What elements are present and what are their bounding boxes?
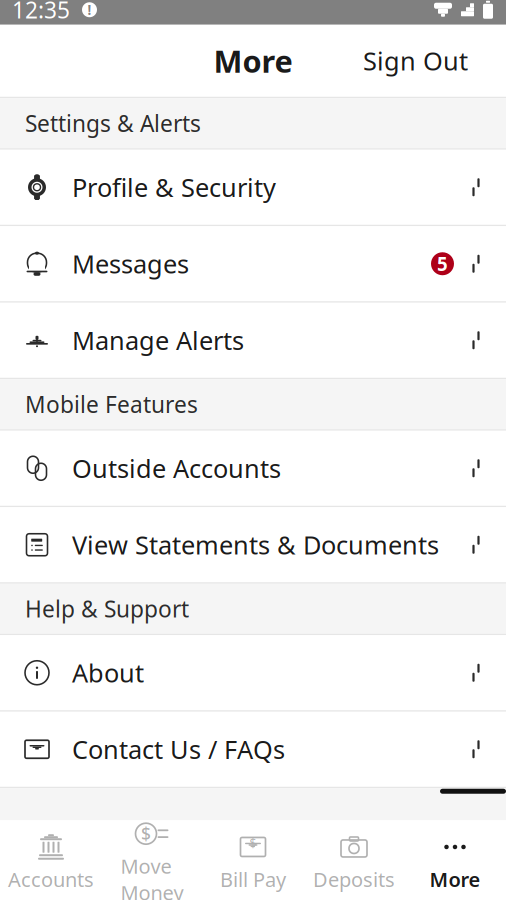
button[interactable]: Outside Accounts (0, 431, 506, 506)
staticText: Settings & Alerts (25, 108, 201, 138)
button[interactable]: Accounts (0, 827, 101, 899)
staticText: About (72, 656, 144, 689)
staticText: Move Money (120, 853, 183, 900)
button[interactable]: $ (101, 827, 202, 899)
button[interactable]: Deposits (303, 827, 404, 899)
staticText: Mobile Features (25, 389, 198, 419)
button[interactable]: Contact Us / FAQs (0, 712, 506, 787)
button[interactable]: View Statements & Documents (0, 507, 506, 582)
button[interactable]: Sign Out (349, 32, 482, 89)
staticText: More (213, 40, 292, 81)
staticText: View Statements & Documents (72, 528, 439, 561)
staticText: Bill Pay (220, 866, 286, 893)
button[interactable]: About (0, 635, 506, 710)
staticText: More (429, 866, 480, 893)
staticText: $ (249, 835, 256, 851)
staticText: Sign Out (363, 44, 468, 77)
staticText: Deposits (313, 866, 395, 893)
button[interactable]: Messages (0, 226, 506, 301)
staticText: ! (87, 1, 91, 19)
staticText: Manage Alerts (72, 323, 244, 357)
button[interactable]: $ (202, 827, 303, 899)
staticText: Messages (72, 247, 189, 280)
staticText: $ (141, 822, 151, 845)
staticText: Accounts (8, 866, 94, 893)
staticText: Outside Accounts (72, 451, 281, 485)
button[interactable]: More (404, 827, 505, 899)
button[interactable]: Manage Alerts (0, 303, 506, 378)
staticText: 5 (437, 251, 448, 276)
staticText: Contact Us / FAQs (72, 732, 285, 766)
staticText: 12:35 (12, 0, 70, 25)
staticText: Help & Support (25, 594, 189, 624)
staticText: Profile & Security (72, 170, 276, 204)
button[interactable]: Profile & Security (0, 150, 506, 225)
